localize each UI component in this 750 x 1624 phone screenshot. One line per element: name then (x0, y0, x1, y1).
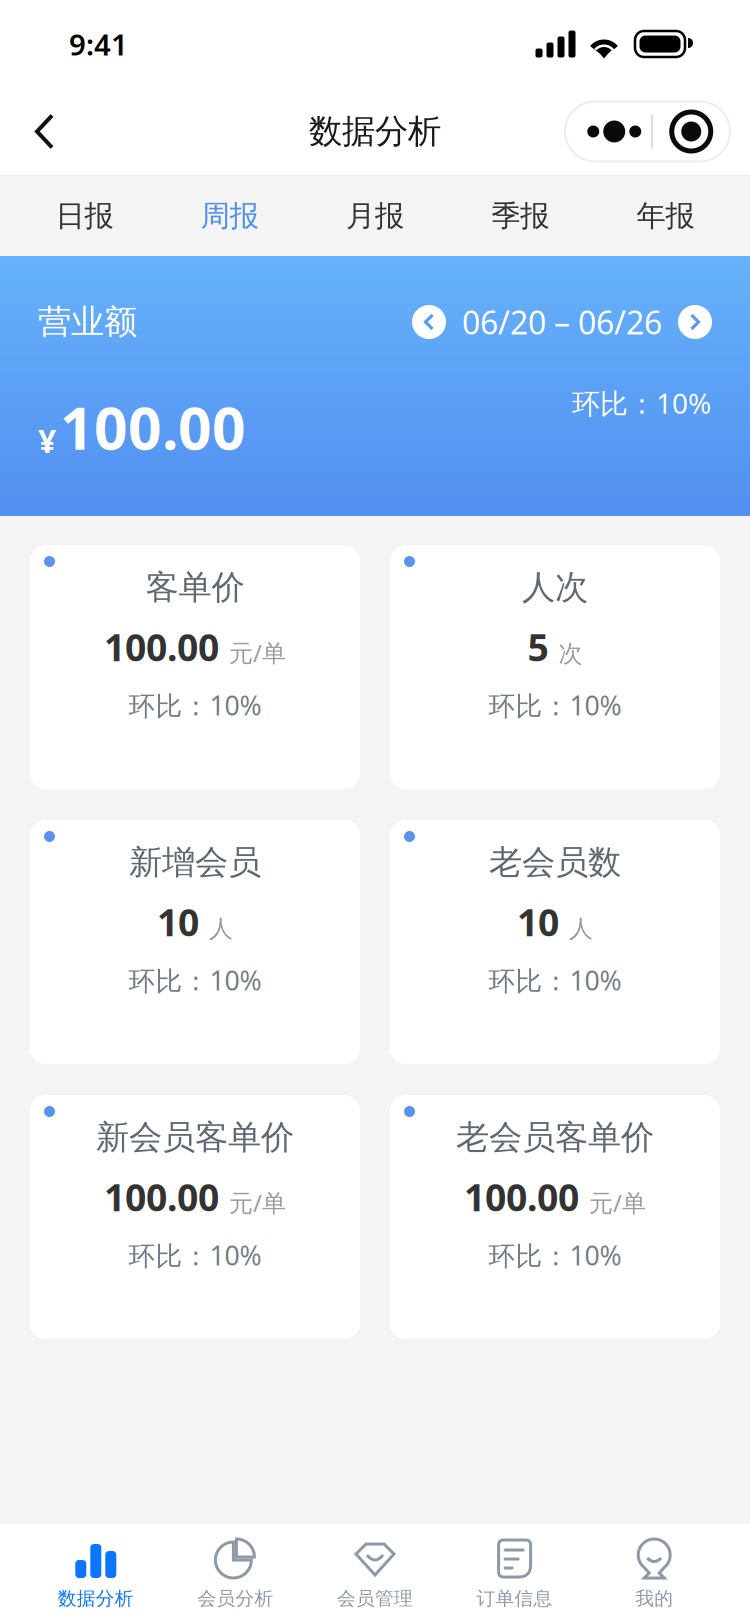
staticText: 元/单 (229, 637, 286, 668)
button[interactable]: 日报 (12, 176, 157, 256)
staticText: 元/单 (589, 1187, 646, 1218)
staticText: 10 (157, 897, 199, 946)
staticText: 季报 (491, 198, 549, 234)
button[interactable]: 返回 (11, 88, 79, 174)
staticText: 100.00 (60, 388, 246, 466)
button[interactable]: 我的 (584, 1524, 724, 1624)
staticText: 数据分析 (58, 1587, 134, 1610)
staticText: 9:41 (69, 24, 128, 63)
staticText: 新会员客单价 (96, 1117, 294, 1158)
button[interactable]: 人次 (390, 545, 720, 789)
staticText: 06/20 – 06/26 (462, 301, 662, 343)
button[interactable]: 客单价 (30, 545, 360, 789)
staticText: 环比：10% (572, 384, 711, 422)
staticText: 10 (517, 897, 559, 946)
staticText: 环比：10% (128, 687, 261, 723)
staticText: 周报 (201, 198, 259, 234)
button[interactable]: 更多 (565, 101, 651, 161)
button[interactable]: 新增会员 (30, 820, 360, 1064)
staticText: 环比：10% (488, 1237, 621, 1273)
staticText: 年报 (636, 198, 694, 234)
staticText: 环比：10% (128, 1237, 261, 1273)
staticText: 老会员客单价 (456, 1117, 654, 1158)
button[interactable]: 下一周 (678, 305, 712, 339)
staticText: 100.00 (464, 1172, 579, 1221)
staticText: 日报 (56, 198, 114, 234)
button[interactable]: 订单信息 (445, 1524, 584, 1624)
button[interactable]: 上一周 (412, 305, 446, 339)
staticText: 环比：10% (488, 962, 621, 998)
staticText: 人 (569, 914, 593, 943)
button[interactable]: 小程序菜单 (653, 101, 730, 161)
button[interactable]: 会员管理 (305, 1524, 445, 1624)
staticText: 人 (209, 914, 233, 943)
button[interactable]: 新会员客单价 (30, 1095, 360, 1339)
staticText: 老会员数 (489, 842, 621, 883)
staticText: 新增会员 (129, 842, 261, 883)
button[interactable]: 月报 (302, 176, 448, 256)
staticText: 人次 (522, 567, 588, 608)
staticText: 数据分析 (309, 111, 441, 152)
button[interactable]: 老会员数 (390, 820, 720, 1064)
button[interactable]: 年报 (593, 176, 738, 256)
staticText: 订单信息 (477, 1587, 553, 1610)
staticText: 营业额 (38, 301, 137, 342)
staticText: 次 (558, 639, 582, 668)
staticText: 月报 (346, 198, 404, 234)
staticText: 100.00 (104, 1172, 219, 1221)
button[interactable]: 数据分析 (26, 1524, 166, 1624)
staticText: 100.00 (104, 622, 219, 671)
staticText: 会员分析 (197, 1587, 273, 1610)
staticText: 客单价 (145, 567, 244, 608)
staticText: 5 (527, 622, 548, 671)
button[interactable]: 老会员客单价 (390, 1095, 720, 1339)
staticText: 环比：10% (128, 962, 261, 998)
staticText: 环比：10% (488, 687, 621, 723)
staticText: 我的 (635, 1587, 673, 1610)
button[interactable]: 季报 (448, 176, 593, 256)
staticText: 元/单 (229, 1187, 286, 1218)
button[interactable]: 会员分析 (166, 1524, 305, 1624)
staticText: 会员管理 (337, 1587, 413, 1610)
button[interactable]: 周报 (157, 176, 302, 256)
staticText: ¥ (38, 419, 56, 462)
